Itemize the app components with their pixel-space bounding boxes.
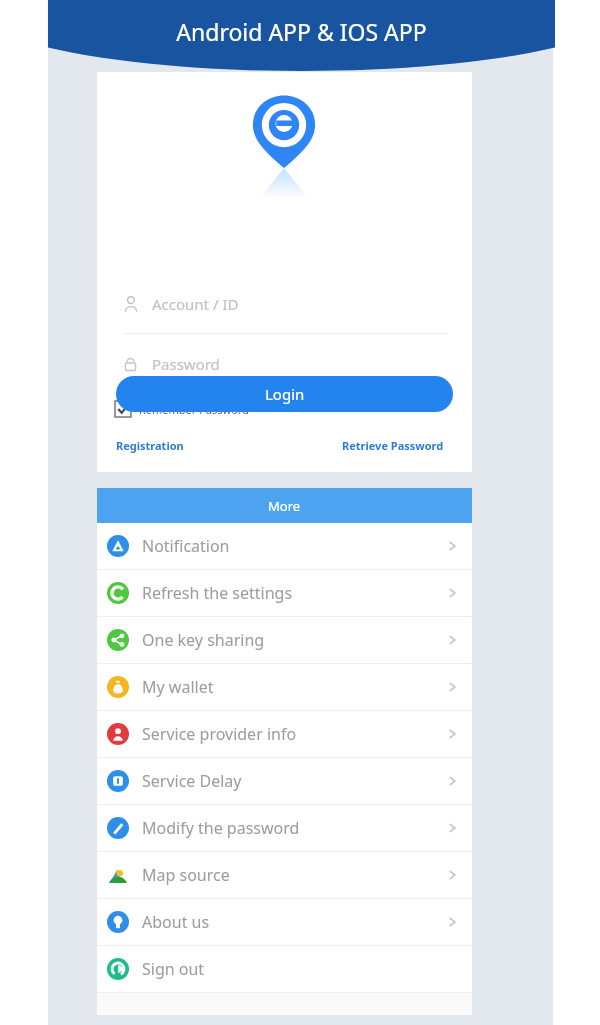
staticText: About us bbox=[142, 911, 210, 933]
staticText: Modify the password bbox=[142, 817, 300, 839]
staticText: Registration bbox=[116, 438, 184, 453]
staticText: Login bbox=[265, 384, 305, 404]
staticText: My wallet bbox=[142, 676, 214, 698]
button[interactable]: Notification bbox=[97, 523, 472, 569]
button[interactable]: About us bbox=[97, 899, 472, 945]
staticText: Service provider info bbox=[142, 723, 297, 745]
button[interactable]: Registration bbox=[114, 436, 186, 455]
button[interactable]: Service Delay bbox=[97, 758, 472, 804]
staticText: Notification bbox=[142, 535, 230, 557]
staticText: Service Delay bbox=[142, 770, 242, 792]
button[interactable]: Refresh the settings bbox=[97, 570, 472, 616]
staticText: One key sharing bbox=[142, 629, 265, 651]
button[interactable]: One key sharing bbox=[97, 617, 472, 663]
button[interactable]: Sign out bbox=[97, 946, 472, 992]
staticText: Retrieve Password bbox=[342, 438, 444, 453]
staticText: More bbox=[268, 497, 301, 515]
staticText: Android APP & IOS APP bbox=[48, 16, 555, 47]
button[interactable]: More bbox=[97, 488, 472, 523]
staticText: Account / ID bbox=[152, 294, 239, 314]
staticText: Sign out bbox=[142, 958, 205, 980]
button[interactable]: Login bbox=[116, 376, 453, 412]
staticText: Map source bbox=[142, 864, 230, 886]
button[interactable]: Retrieve Password bbox=[340, 436, 446, 455]
staticText: Remember Password bbox=[139, 402, 249, 417]
button[interactable]: Modify the password bbox=[97, 805, 472, 851]
staticText: Refresh the settings bbox=[142, 582, 293, 604]
button[interactable]: Service provider info bbox=[97, 711, 472, 757]
button[interactable]: Remember Password bbox=[115, 396, 249, 422]
button[interactable]: Map source bbox=[97, 852, 472, 898]
button[interactable]: My wallet bbox=[97, 664, 472, 710]
staticText: Password bbox=[152, 354, 220, 374]
